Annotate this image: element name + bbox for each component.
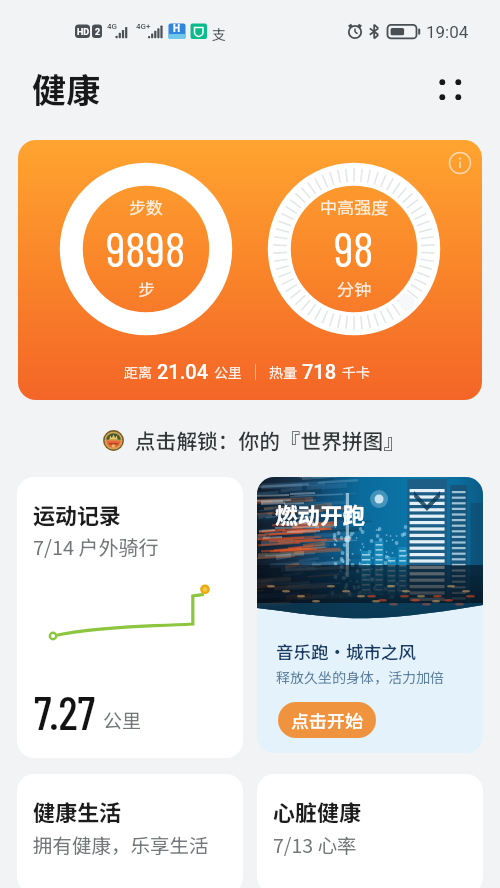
button[interactable]: Info [18,140,482,400]
staticText: 释放久坐的身体，活力加倍 [276,667,444,687]
staticText: HD [77,27,90,38]
staticText: H [173,23,181,35]
staticText: 19:04 [426,22,469,42]
staticText: 公里 [103,706,142,734]
staticText: 9898 [106,219,186,271]
staticText: 步数 [129,194,163,219]
staticText: 距离 [124,362,152,382]
staticText: 健康生活 [33,795,122,827]
staticText: 热量 [269,362,297,382]
button[interactable]: 燃动开跑 [257,477,483,753]
staticText: 千卡 [342,362,370,382]
staticText: 21.04 [157,360,209,383]
button[interactable]: 运动记录 [17,477,243,758]
staticText: 点击开始 [291,707,363,733]
staticText: 音乐跑·城市之风 [276,639,416,664]
staticText: 公里 [214,362,242,382]
staticText: 718 [302,360,337,383]
staticText: 4G [107,22,117,31]
button[interactable]: 健康生活 [17,774,243,888]
staticText: 拥有健康，乐享生活 [33,830,209,858]
staticText: 2 [95,27,101,38]
staticText: 支 [212,24,226,44]
staticText: 7.27 [34,684,96,739]
button[interactable]: More options [428,68,472,112]
staticText: 7/13 心率 [273,830,357,858]
staticText: 步 [138,276,155,301]
staticText: 中高强度 [320,194,388,219]
staticText: 分钟 [337,276,371,301]
staticText: 健康 [32,64,100,113]
button[interactable]: 点击开始 [278,702,376,738]
staticText: 7/14 户外骑行 [33,532,159,561]
button[interactable]: 心脏健康 [257,774,483,888]
staticText: 燃动开跑 [275,498,366,531]
button[interactable]: Info [447,150,473,176]
staticText: 运动记录 [33,498,122,530]
staticText: 心脏健康 [273,795,362,827]
staticText: 点击解锁：你的『世界拼图』 [135,425,404,455]
staticText: 4G+ [136,22,151,31]
staticText: 98 [334,219,374,271]
button[interactable]: 点击解锁：你的『世界拼图』 [3,424,500,456]
